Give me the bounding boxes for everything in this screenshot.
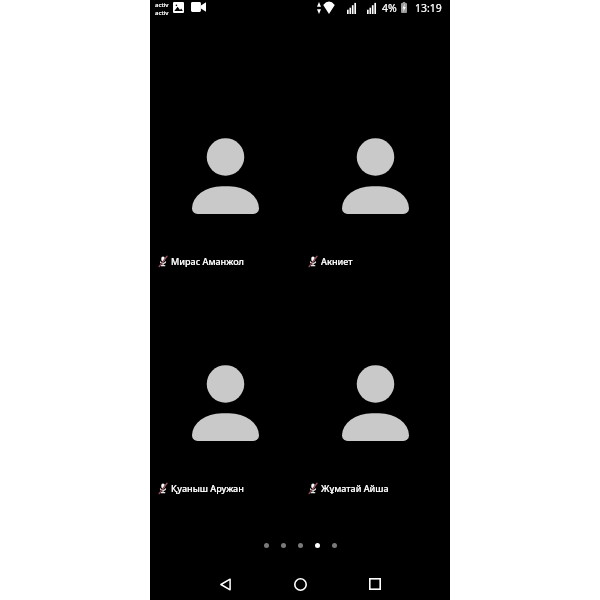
button[interactable]: Recents — [360, 569, 390, 599]
staticText: activ — [155, 1, 169, 9]
button[interactable]: Жұматай Айша — [300, 355, 450, 582]
staticText: Акниет — [321, 255, 353, 267]
button[interactable]: Акниет — [300, 128, 450, 355]
staticText: activ — [155, 9, 169, 17]
button[interactable]: Back — [210, 569, 240, 599]
button[interactable]: Қуаныш Аружан — [150, 355, 300, 582]
staticText: 4% — [382, 1, 397, 15]
staticText: Мирас Аманжол — [171, 255, 244, 267]
button[interactable]: Home — [285, 569, 315, 599]
staticText: Қуаныш Аружан — [171, 482, 244, 494]
staticText: 13:19 — [415, 1, 442, 15]
button[interactable]: Мирас Аманжол — [150, 128, 300, 355]
staticText: Жұматай Айша — [321, 482, 389, 494]
